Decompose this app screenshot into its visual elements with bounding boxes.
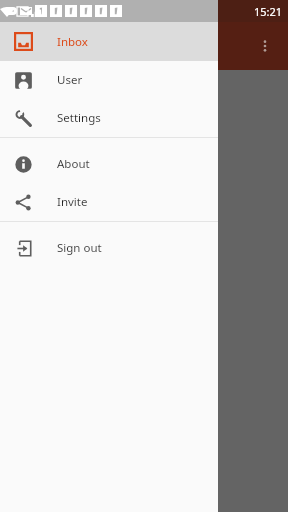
button[interactable]: About bbox=[0, 145, 218, 183]
button[interactable]: User bbox=[0, 61, 218, 99]
button[interactable]: Close navigation drawer bbox=[0, 70, 288, 512]
button[interactable]: Settings bbox=[0, 99, 218, 137]
staticText: 15:21 bbox=[254, 4, 283, 19]
staticText: Settings bbox=[57, 110, 101, 126]
button[interactable]: Invite bbox=[0, 183, 218, 221]
button[interactable]: Inbox bbox=[0, 22, 218, 61]
button[interactable]: Sign out bbox=[0, 229, 218, 267]
button[interactable]: More options bbox=[248, 29, 282, 63]
staticText: About bbox=[57, 156, 90, 172]
staticText: Invite bbox=[57, 194, 88, 210]
staticText: Sign out bbox=[57, 240, 102, 256]
staticText: User bbox=[57, 72, 83, 88]
staticText: Inbox bbox=[57, 34, 88, 50]
